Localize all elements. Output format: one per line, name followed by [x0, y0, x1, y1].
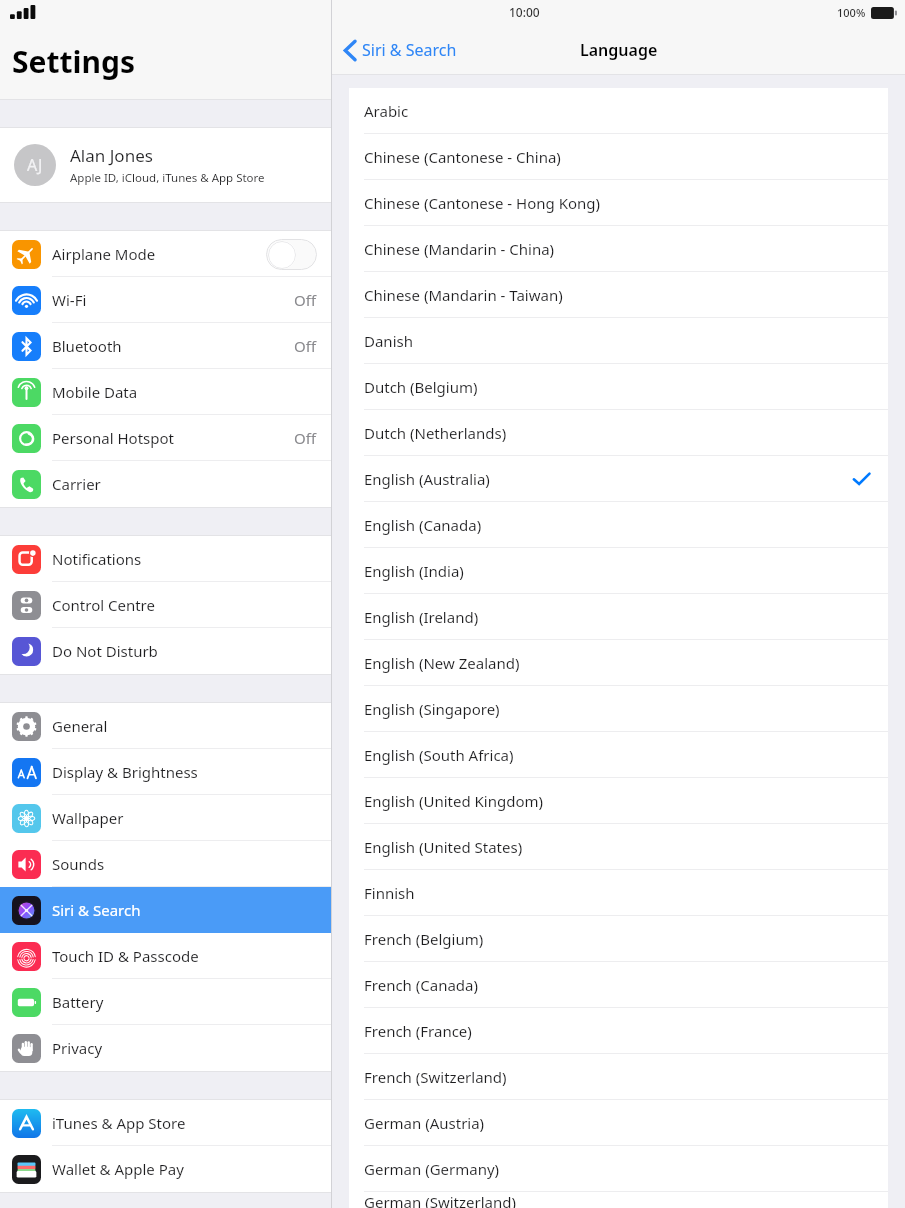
staticText: Notifications — [52, 549, 142, 569]
button[interactable]: General — [0, 703, 331, 749]
button[interactable]: iTunes & App Store — [0, 1100, 331, 1146]
staticText: 10:00 — [509, 4, 540, 20]
button[interactable]: Chinese (Cantonese - Hong Kong) — [349, 180, 888, 226]
button[interactable]: Finnish — [349, 870, 888, 916]
button[interactable]: English (Canada) — [349, 502, 888, 548]
staticText: Wallet & Apple Pay — [52, 1159, 184, 1179]
staticText: Carrier — [52, 474, 101, 494]
button[interactable]: Carrier — [0, 461, 331, 507]
button[interactable]: English (Singapore) — [349, 686, 888, 732]
staticText: Off — [294, 290, 317, 310]
button[interactable]: French (Switzerland) — [349, 1054, 888, 1100]
button[interactable]: Dutch (Netherlands) — [349, 410, 888, 456]
staticText: Display & Brightness — [52, 762, 198, 782]
staticText: English (Australia) — [364, 469, 490, 489]
staticText: Off — [294, 428, 317, 448]
button[interactable]: German (Switzerland) — [349, 1192, 888, 1208]
staticText: Battery — [52, 992, 104, 1012]
button[interactable]: French (Belgium) — [349, 916, 888, 962]
button[interactable]: Privacy — [0, 1025, 331, 1071]
staticText: French (Switzerland) — [364, 1067, 507, 1087]
staticText: Chinese (Mandarin - China) — [364, 239, 555, 259]
staticText: English (New Zealand) — [364, 653, 520, 673]
staticText: English (United Kingdom) — [364, 791, 544, 811]
button[interactable]: German (Germany) — [349, 1146, 888, 1192]
button[interactable]: Bluetooth — [0, 323, 331, 369]
button[interactable]: Mobile Data — [0, 369, 331, 415]
staticText: 100% — [837, 5, 866, 20]
button[interactable]: Airplane Mode — [0, 231, 331, 277]
staticText: English (South Africa) — [364, 745, 514, 765]
staticText: Wallpaper — [52, 808, 124, 828]
staticText: Alan Jones — [70, 144, 153, 167]
staticText: Do Not Disturb — [52, 641, 158, 661]
button[interactable]: Do Not Disturb — [0, 628, 331, 674]
button[interactable]: Danish — [349, 318, 888, 364]
button[interactable]: Airplane Mode toggle — [266, 239, 317, 270]
staticText: German (Germany) — [364, 1159, 500, 1179]
staticText: French (Belgium) — [364, 929, 484, 949]
staticText: iTunes & App Store — [52, 1113, 186, 1133]
button[interactable]: Control Centre — [0, 582, 331, 628]
staticText: Siri & Search — [52, 900, 141, 920]
button[interactable]: French (Canada) — [349, 962, 888, 1008]
staticText: AJ — [27, 154, 43, 176]
button[interactable]: Siri & Search — [0, 887, 331, 933]
staticText: Finnish — [364, 883, 415, 903]
button[interactable]: Siri & Search — [332, 28, 467, 72]
button[interactable]: English (India) — [349, 548, 888, 594]
button[interactable]: Display & Brightness — [0, 749, 331, 795]
staticText: General — [52, 716, 108, 736]
button[interactable]: Sounds — [0, 841, 331, 887]
staticText: Chinese (Mandarin - Taiwan) — [364, 285, 563, 305]
button[interactable]: English (New Zealand) — [349, 640, 888, 686]
staticText: Off — [294, 336, 317, 356]
button[interactable]: AJ — [0, 128, 331, 202]
button[interactable]: German (Austria) — [349, 1100, 888, 1146]
staticText: French (France) — [364, 1021, 472, 1041]
staticText: Danish — [364, 331, 413, 351]
button[interactable]: Notifications — [0, 536, 331, 582]
button[interactable]: Chinese (Mandarin - Taiwan) — [349, 272, 888, 318]
staticText: Bluetooth — [52, 336, 122, 356]
button[interactable]: Wallpaper — [0, 795, 331, 841]
staticText: Control Centre — [52, 595, 155, 615]
staticText: English (Ireland) — [364, 607, 479, 627]
button[interactable]: Wallet & Apple Pay — [0, 1146, 331, 1192]
button[interactable]: Personal Hotspot — [0, 415, 331, 461]
button[interactable]: French (France) — [349, 1008, 888, 1054]
staticText: English (United States) — [364, 837, 523, 857]
staticText: Chinese (Cantonese - Hong Kong) — [364, 193, 600, 213]
staticText: Settings — [12, 41, 135, 82]
staticText: English (India) — [364, 561, 464, 581]
staticText: Dutch (Belgium) — [364, 377, 478, 397]
staticText: Touch ID & Passcode — [52, 946, 199, 966]
staticText: Sounds — [52, 854, 105, 874]
button[interactable]: Arabic — [349, 88, 888, 134]
button[interactable]: Battery — [0, 979, 331, 1025]
staticText: Personal Hotspot — [52, 428, 174, 448]
staticText: Privacy — [52, 1038, 103, 1058]
button[interactable]: Touch ID & Passcode — [0, 933, 331, 979]
staticText: Mobile Data — [52, 382, 138, 402]
staticText: Arabic — [364, 101, 409, 121]
staticText: Airplane Mode — [52, 244, 156, 264]
button[interactable]: Chinese (Cantonese - China) — [349, 134, 888, 180]
staticText: Language — [580, 39, 658, 61]
button[interactable]: Wi-Fi — [0, 277, 331, 323]
button[interactable]: English (South Africa) — [349, 732, 888, 778]
button[interactable]: English (Australia) — [349, 456, 888, 502]
staticText: Chinese (Cantonese - China) — [364, 147, 561, 167]
button[interactable]: English (United Kingdom) — [349, 778, 888, 824]
button[interactable]: English (Ireland) — [349, 594, 888, 640]
button[interactable]: English (United States) — [349, 824, 888, 870]
button[interactable]: Dutch (Belgium) — [349, 364, 888, 410]
staticText: French (Canada) — [364, 975, 479, 995]
staticText: English (Canada) — [364, 515, 482, 535]
staticText: Wi-Fi — [52, 290, 87, 310]
staticText: Dutch (Netherlands) — [364, 423, 507, 443]
button[interactable]: Chinese (Mandarin - China) — [349, 226, 888, 272]
staticText: Apple ID, iCloud, iTunes & App Store — [70, 170, 265, 186]
staticText: Siri & Search — [362, 39, 457, 61]
staticText: German (Switzerland) — [364, 1192, 516, 1208]
